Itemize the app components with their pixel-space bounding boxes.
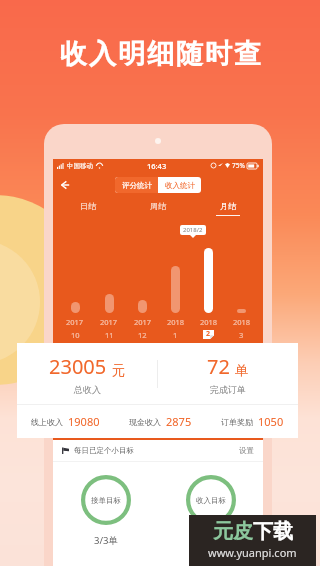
staticText: 2875: [166, 414, 192, 429]
staticText: 23005: [49, 353, 107, 380]
staticText: 2017: [100, 317, 118, 327]
button[interactable]: 日结: [53, 201, 123, 223]
staticText: 2017: [134, 317, 152, 327]
button[interactable]: 收入目标: [158, 462, 263, 566]
staticText: 3: [239, 330, 244, 339]
staticText: 评分统计: [122, 181, 152, 190]
staticText: 2018: [200, 317, 218, 327]
staticText: 收入统计: [165, 181, 195, 190]
staticText: 2017: [66, 317, 84, 327]
staticText: 2: [206, 329, 211, 338]
staticText: 中国移动: [67, 162, 93, 170]
staticText: 日结: [80, 201, 96, 211]
staticText: 元皮: [213, 519, 253, 544]
staticText: 周结: [150, 201, 166, 211]
staticText: 16:43: [147, 161, 167, 171]
staticText: 12: [138, 330, 147, 339]
staticText: 订单奖励: [221, 417, 253, 427]
staticText: 11: [105, 330, 114, 339]
button[interactable]: 设置: [239, 446, 254, 455]
staticText: 收入明细随时查: [59, 37, 262, 71]
staticText: 19080: [68, 414, 100, 429]
staticText: 设置: [239, 446, 254, 455]
staticText: www.yuanpi.com: [208, 545, 297, 560]
staticText: 2018: [167, 317, 185, 327]
staticText: 元: [112, 362, 126, 379]
button[interactable]: 接单目标: [53, 462, 158, 566]
staticText: 1050: [258, 414, 284, 429]
staticText: 月结: [220, 201, 236, 211]
staticText: 10: [71, 330, 80, 339]
button[interactable]: 评分统计: [115, 177, 158, 193]
staticText: 接单目标: [91, 496, 121, 505]
staticText: 完成订单: [210, 384, 246, 395]
staticText: 2018/2: [183, 226, 203, 234]
button[interactable]: 收入统计: [158, 177, 201, 193]
button[interactable]: 周结: [123, 201, 193, 223]
button[interactable]: Back: [58, 178, 72, 192]
staticText: 线上收入: [31, 417, 63, 427]
staticText: 1: [173, 330, 178, 339]
staticText: 总收入: [74, 384, 101, 395]
staticText: 下载: [253, 519, 293, 544]
staticText: 每日已定个小目标: [74, 446, 134, 455]
staticText: 现金收入: [129, 417, 161, 427]
staticText: 收入目标: [196, 496, 226, 505]
staticText: 单: [235, 362, 249, 379]
staticText: 2018: [233, 317, 251, 327]
button[interactable]: 月结: [193, 201, 263, 223]
staticText: 3/3单: [94, 534, 118, 547]
staticText: 75%: [232, 161, 245, 170]
staticText: 72: [207, 353, 230, 380]
